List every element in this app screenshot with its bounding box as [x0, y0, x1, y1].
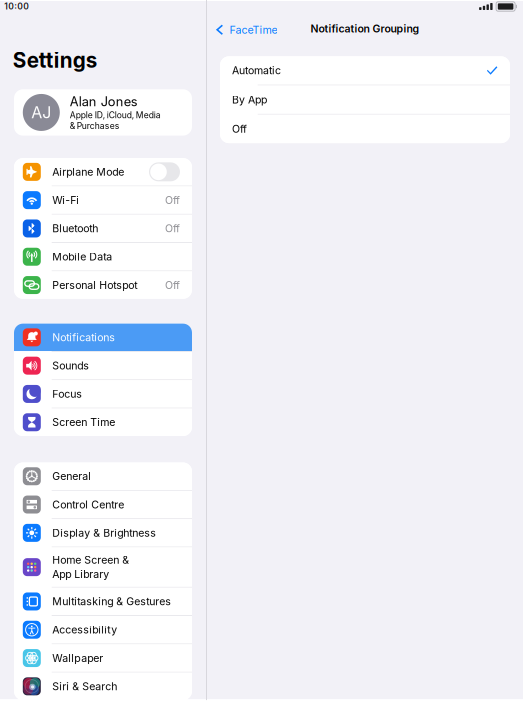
staticText: Control Centre: [52, 498, 124, 511]
staticText: Multitasking & Gestures: [52, 595, 171, 608]
button[interactable]: FaceTime: [214, 18, 279, 41]
staticText: Off: [165, 194, 180, 206]
button[interactable]: Wi-Fi: [14, 186, 192, 214]
staticText: Airplane Mode: [52, 165, 124, 178]
button[interactable]: AJ: [0, 89, 206, 136]
button[interactable]: Control Centre: [14, 491, 192, 518]
staticText: Home Screen &: [52, 554, 129, 566]
staticText: Wi-Fi: [52, 194, 79, 206]
staticText: Siri & Search: [52, 680, 117, 693]
button[interactable]: Focus: [14, 380, 192, 408]
staticText: Off: [232, 122, 247, 135]
staticText: Off: [165, 279, 180, 291]
button[interactable]: By App: [220, 85, 510, 114]
staticText: Off: [165, 222, 180, 235]
staticText: Screen Time: [52, 416, 115, 429]
staticText: FaceTime: [229, 23, 277, 36]
button[interactable]: Sounds: [14, 352, 192, 379]
button[interactable]: Siri & Search: [14, 673, 192, 700]
button[interactable]: Airplane Mode: [14, 158, 192, 186]
button[interactable]: Bluetooth: [14, 215, 192, 242]
button[interactable]: Home Screen &: [14, 547, 192, 587]
staticText: Display & Brightness: [52, 526, 156, 539]
button[interactable]: Accessibility: [14, 616, 192, 643]
staticText: By App: [232, 93, 267, 106]
staticText: Notifications: [52, 331, 115, 344]
staticText: Notification Grouping: [310, 22, 419, 35]
staticText: Wallpaper: [52, 652, 103, 664]
button[interactable]: Mobile Data: [14, 243, 192, 270]
staticText: Bluetooth: [52, 222, 98, 235]
staticText: Alan Jones: [70, 94, 138, 109]
staticText: Accessibility: [52, 623, 117, 636]
button[interactable]: Notifications: [14, 324, 192, 351]
staticText: 10:00: [4, 1, 29, 12]
button[interactable]: Multitasking & Gestures: [14, 588, 192, 615]
button[interactable]: Screen Time: [14, 408, 192, 436]
staticText: Mobile Data: [52, 250, 112, 263]
staticText: Personal Hotspot: [52, 279, 137, 291]
staticText: Settings: [13, 48, 98, 73]
staticText: Sounds: [52, 359, 89, 372]
button[interactable]: Wallpaper: [14, 644, 192, 672]
button[interactable]: General: [14, 462, 192, 490]
button[interactable]: Automatic: [220, 56, 510, 85]
button[interactable]: Off: [220, 115, 510, 143]
staticText: Focus: [52, 388, 82, 400]
button[interactable]: Display & Brightness: [14, 519, 192, 547]
staticText: Apple ID, iCloud, Media: [70, 110, 161, 120]
staticText: & Purchases: [70, 121, 120, 131]
button[interactable]: Personal Hotspot: [14, 271, 192, 299]
staticText: General: [52, 470, 91, 483]
staticText: Automatic: [232, 64, 281, 77]
staticText: AJ: [31, 103, 51, 122]
staticText: App Library: [52, 568, 109, 581]
